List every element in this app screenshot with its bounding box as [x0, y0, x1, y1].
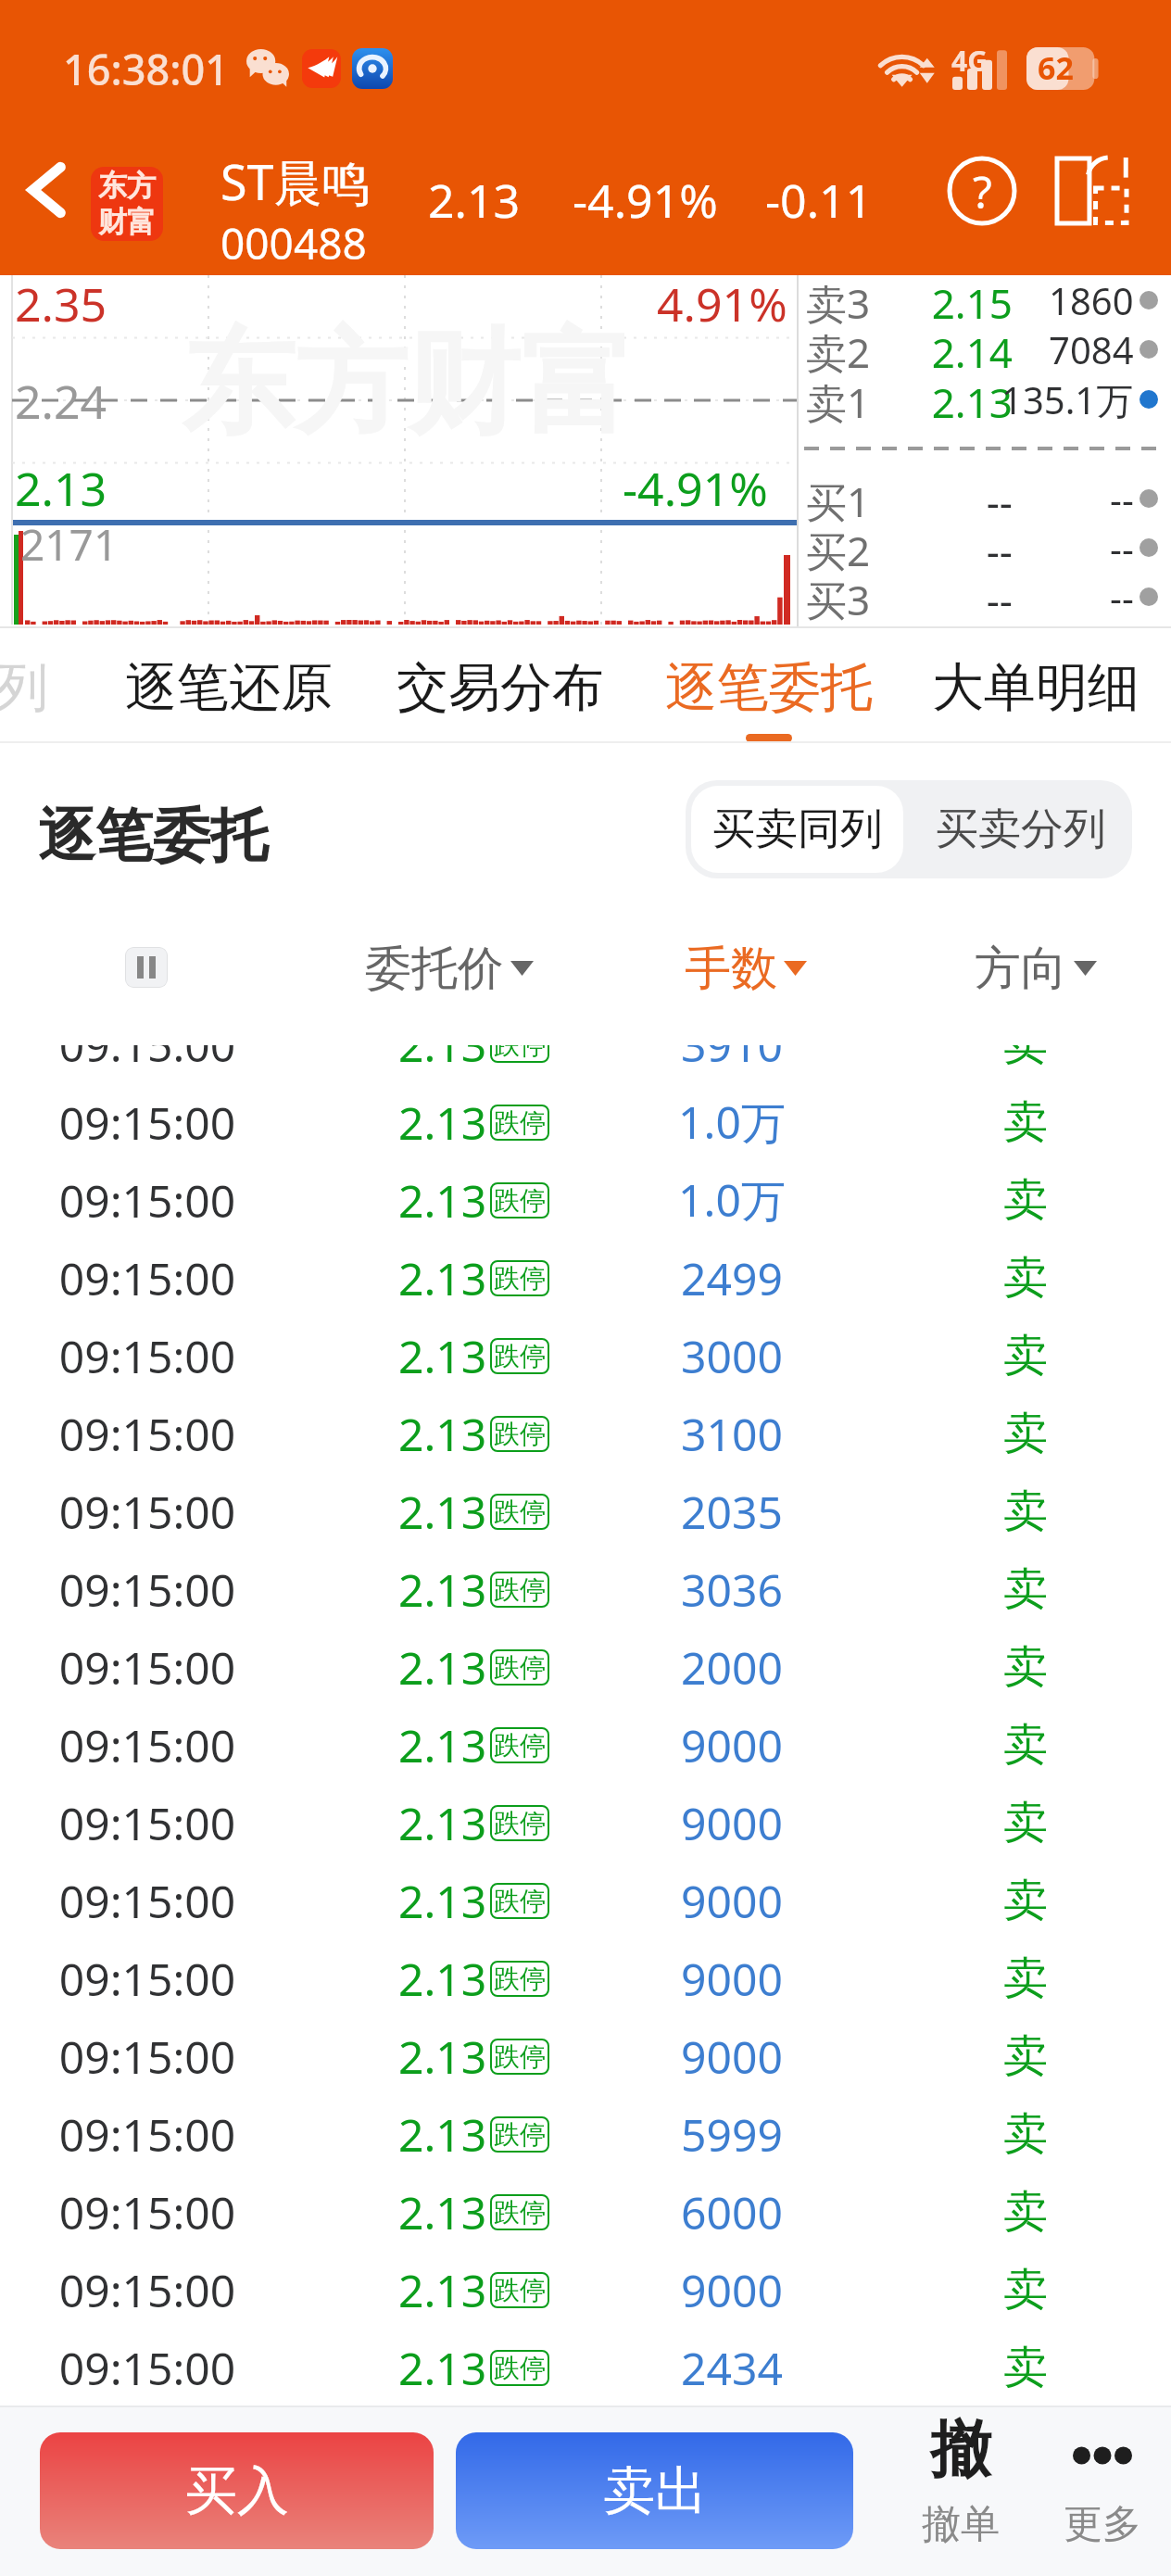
- button[interactable]: 买1: [799, 474, 1171, 523]
- button[interactable]: 委托价: [296, 927, 602, 1010]
- staticText: 跌停: [494, 1496, 546, 1528]
- button[interactable]: 逐笔还原: [108, 628, 349, 743]
- button[interactable]: 09:15:00: [0, 1083, 1171, 1161]
- button[interactable]: 卖出: [456, 2432, 853, 2549]
- staticText: --: [799, 572, 1013, 621]
- staticText: 跌停: [494, 1963, 546, 1995]
- button[interactable]: Help: [938, 146, 1026, 235]
- button[interactable]: 09:15:00: [0, 1472, 1171, 1550]
- staticText: 2.35: [15, 272, 107, 335]
- button[interactable]: 09:15:00: [0, 1161, 1171, 1239]
- staticText: --: [799, 523, 1013, 572]
- staticText: 跌停: [494, 1807, 546, 1839]
- staticText: 3036: [579, 1559, 885, 1620]
- button[interactable]: 买卖同列: [691, 786, 903, 873]
- staticText: 撤单: [922, 2500, 1000, 2549]
- staticText: 2.15: [799, 275, 1013, 324]
- staticText: 卖: [873, 2106, 1171, 2162]
- button[interactable]: 09:15:00: [0, 1939, 1171, 2017]
- staticText: 逐笔还原: [125, 655, 333, 721]
- button[interactable]: 卖3: [799, 275, 1171, 324]
- staticText: 09:15:00: [0, 2182, 300, 2242]
- button[interactable]: 手数: [593, 927, 899, 1010]
- button[interactable]: 09:15:00: [0, 1239, 1171, 1317]
- staticText: 卖2: [806, 324, 871, 373]
- button[interactable]: 卖1: [799, 374, 1171, 423]
- button[interactable]: 09:15:00: [0, 1045, 1171, 1083]
- staticText: 2.13: [398, 2182, 487, 2242]
- staticText: 2.24: [15, 370, 107, 433]
- staticText: 卖: [873, 1250, 1171, 1306]
- button[interactable]: 09:15:00: [0, 1628, 1171, 1706]
- button[interactable]: 09:15:00: [0, 1395, 1171, 1472]
- button[interactable]: 东方: [91, 167, 163, 241]
- button[interactable]: 撤: [877, 2409, 1044, 2576]
- staticText: 09:15:00: [0, 2104, 300, 2165]
- button[interactable]: 更多: [1019, 2409, 1171, 2576]
- button[interactable]: Pause: [125, 947, 168, 988]
- staticText: 9000: [579, 1715, 885, 1775]
- button[interactable]: 大单明细: [915, 628, 1156, 743]
- staticText: 卖1: [806, 374, 871, 423]
- staticText: 09:15:00: [0, 2027, 300, 2087]
- staticText: 跌停: [494, 2040, 546, 2073]
- button[interactable]: 09:15:00: [0, 1862, 1171, 1939]
- staticText: 135.1万: [1001, 374, 1134, 423]
- staticText: 东方财富: [182, 313, 634, 456]
- staticText: 买卖同列: [712, 802, 883, 856]
- button[interactable]: 09:15:00: [0, 2017, 1171, 2095]
- button[interactable]: 交易分布: [380, 628, 621, 743]
- button[interactable]: Back: [4, 144, 89, 236]
- staticText: 逐笔委托: [38, 800, 268, 872]
- staticText: 卖出: [603, 2458, 707, 2524]
- staticText: 跌停: [494, 2118, 546, 2151]
- staticText: 1.0万: [579, 1092, 885, 1153]
- staticText: ?: [973, 161, 992, 221]
- staticText: 09:15:00: [0, 1482, 300, 1542]
- staticText: 撤: [930, 2411, 991, 2488]
- staticText: 卖: [873, 1951, 1171, 2006]
- staticText: 2.13: [398, 1404, 487, 1464]
- staticText: 交易分布: [397, 655, 604, 721]
- staticText: 卖: [873, 2028, 1171, 2084]
- staticText: 卖: [873, 1094, 1171, 1150]
- staticText: 跌停: [494, 2274, 546, 2306]
- button[interactable]: 09:15:00: [0, 2095, 1171, 2173]
- button[interactable]: 逐笔委托: [648, 628, 889, 743]
- button[interactable]: 09:15:00: [0, 2329, 1171, 2404]
- staticText: 买卖分列: [936, 802, 1106, 856]
- button[interactable]: 09:15:00: [0, 1706, 1171, 1784]
- button[interactable]: 09:15:00: [0, 1550, 1171, 1628]
- staticText: 2.13: [428, 169, 521, 232]
- staticText: 卖: [873, 1406, 1171, 1461]
- staticText: 买2: [806, 523, 871, 572]
- staticText: 09:15:00: [0, 1715, 300, 1775]
- staticText: 09:15:00: [0, 1045, 300, 1075]
- staticText: 2.14: [799, 324, 1013, 373]
- staticText: 跌停: [494, 1573, 546, 1606]
- staticText: 更多: [1064, 2500, 1141, 2549]
- staticText: 卖: [873, 1717, 1171, 1773]
- staticText: 逐笔委托: [665, 655, 873, 721]
- button[interactable]: 09:15:00: [0, 1317, 1171, 1395]
- staticText: 9000: [579, 1949, 885, 2009]
- button[interactable]: 09:15:00: [0, 2251, 1171, 2329]
- staticText: 跌停: [494, 1262, 546, 1294]
- button[interactable]: 方向: [883, 927, 1171, 1010]
- staticText: 09:15:00: [0, 1793, 300, 1853]
- button[interactable]: 买3: [799, 572, 1171, 621]
- staticText: 09:15:00: [0, 2260, 300, 2320]
- staticText: 2.13: [398, 1326, 487, 1386]
- staticText: 跌停: [494, 1418, 546, 1450]
- button[interactable]: 09:15:00: [0, 2173, 1171, 2251]
- button[interactable]: 09:15:00: [0, 1784, 1171, 1862]
- button[interactable]: Rotate screen: [1047, 146, 1136, 235]
- button[interactable]: 买入: [40, 2432, 434, 2549]
- button[interactable]: 卖2: [799, 324, 1171, 373]
- staticText: 2434: [579, 2338, 885, 2398]
- button[interactable]: 买卖分列: [909, 780, 1132, 878]
- button[interactable]: 买2: [799, 523, 1171, 572]
- staticText: 4G: [951, 42, 988, 80]
- staticText: 2.13: [398, 1793, 487, 1853]
- staticText: 跌停: [494, 1106, 546, 1139]
